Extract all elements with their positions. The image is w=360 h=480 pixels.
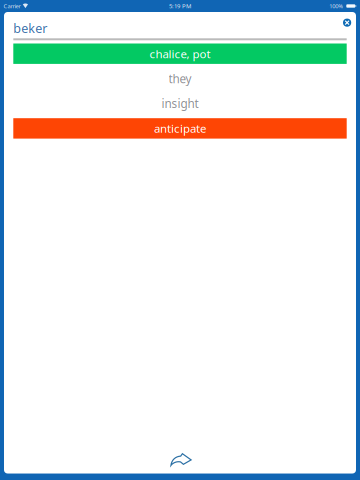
staticText: beker bbox=[13, 20, 47, 37]
button[interactable]: anticipate bbox=[13, 118, 347, 139]
button[interactable]: Share bbox=[157, 447, 203, 473]
staticText: 5:19 PM bbox=[169, 2, 191, 10]
button[interactable]: chalice, pot bbox=[13, 43, 347, 64]
staticText: anticipate bbox=[154, 121, 206, 136]
button[interactable]: they bbox=[13, 68, 347, 89]
button[interactable]: Clear search text bbox=[337, 13, 357, 33]
staticText: chalice, pot bbox=[149, 46, 210, 61]
staticText: 100% bbox=[329, 2, 343, 10]
staticText: Carrier bbox=[4, 2, 21, 10]
staticText: they bbox=[168, 71, 191, 87]
button[interactable]: insight bbox=[13, 93, 347, 114]
staticText: insight bbox=[161, 95, 198, 111]
